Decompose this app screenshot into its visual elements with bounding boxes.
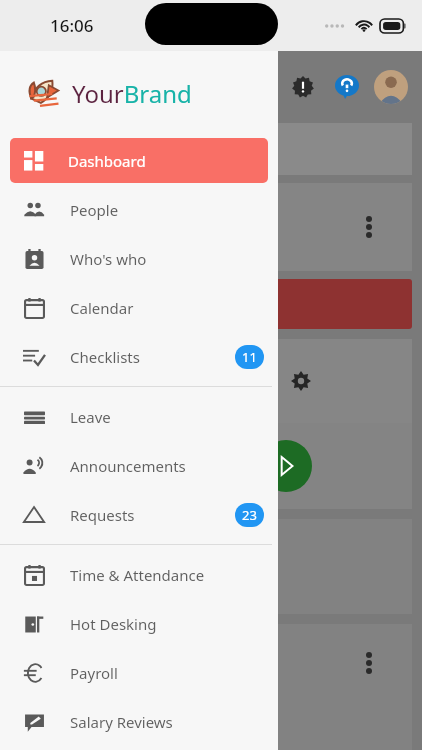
staticText: Time & Attendance (70, 565, 205, 585)
staticText: NAL DETAILS (130, 140, 216, 159)
staticText: 11 (242, 348, 257, 366)
staticText: 16:06 (50, 14, 94, 37)
button[interactable]: Hot Desking (0, 599, 278, 648)
staticText: Requests (70, 505, 135, 525)
button[interactable]: Announcements (0, 441, 278, 490)
staticText: Who's who (70, 249, 147, 269)
staticText: Announcements (70, 456, 186, 476)
button[interactable]: Help (330, 70, 364, 104)
button[interactable]: Leave (0, 392, 278, 441)
staticText: Payroll (70, 663, 118, 683)
button[interactable]: Payroll (0, 648, 278, 697)
button[interactable]: Checklists (0, 332, 278, 381)
button[interactable]: Salary Reviews (0, 697, 278, 746)
staticText: Salary Reviews (70, 712, 173, 732)
button[interactable]: Dashboard (10, 138, 268, 183)
button[interactable]: Requests (0, 490, 278, 539)
button[interactable]: Settings (287, 367, 315, 395)
staticText: Dashboard (68, 151, 146, 171)
staticText: Checklists (70, 347, 140, 367)
staticText: People (70, 200, 119, 220)
staticText: 23 (242, 506, 257, 524)
staticText: Calendar (70, 298, 134, 318)
staticText: Leave (70, 407, 111, 427)
button[interactable]: Time & Attendance (0, 550, 278, 599)
button[interactable]: Profile (374, 70, 408, 104)
button[interactable]: Who's who (0, 234, 278, 283)
staticText: YourBrand (72, 77, 192, 110)
staticText: Hot Desking (70, 614, 157, 634)
button[interactable]: Calendar (0, 283, 278, 332)
button[interactable]: Play (260, 440, 312, 492)
button[interactable]: People (0, 185, 278, 234)
button[interactable]: Alerts (286, 70, 320, 104)
